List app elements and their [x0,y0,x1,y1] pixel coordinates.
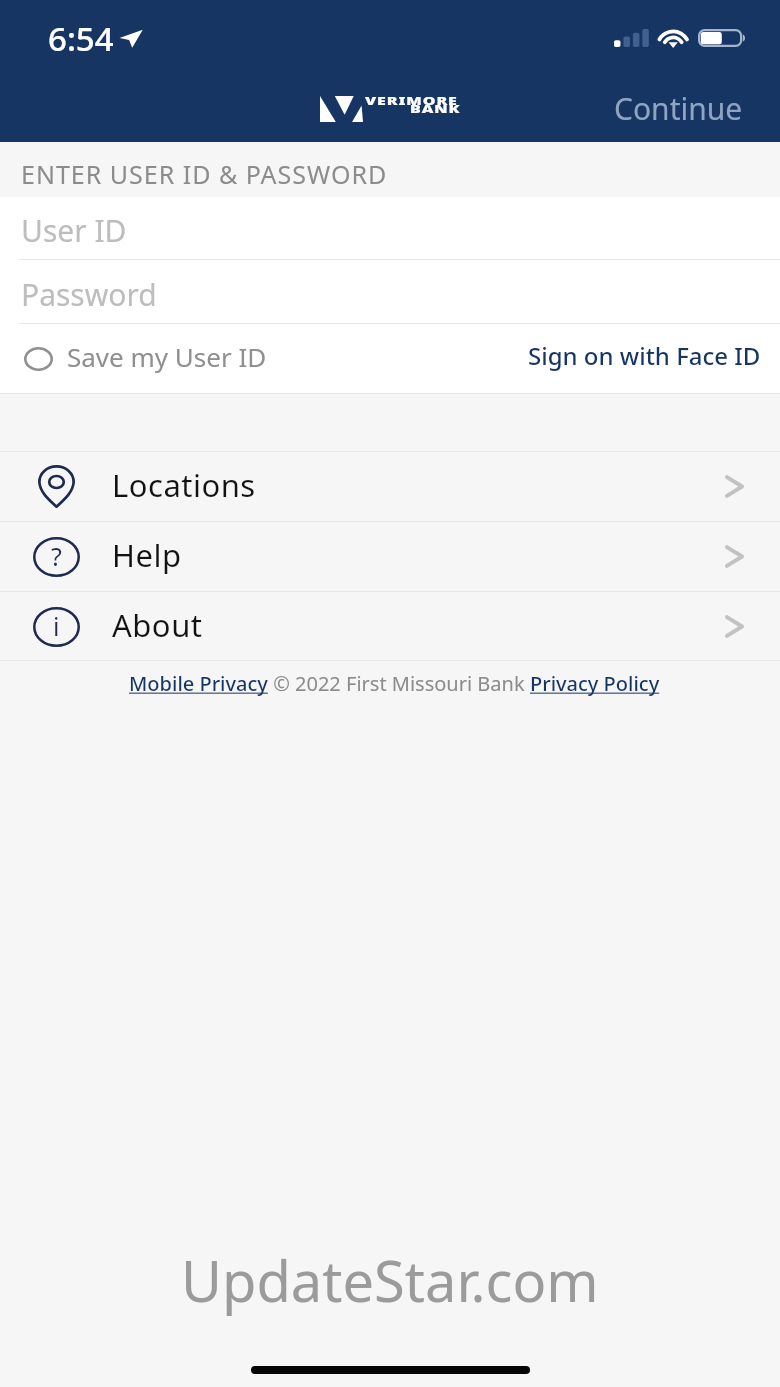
button[interactable] [0,260,780,323]
button[interactable]: Mobile Privacy [129,670,268,697]
button[interactable]: i [0,592,780,661]
other: Location [119,29,143,48]
staticText: © 2022 First Missouri Bank [268,670,530,697]
button[interactable]: Sign on with Face ID [518,333,771,377]
staticText: ? [51,539,62,573]
staticText: Help [112,534,182,576]
staticText: Password [21,274,157,315]
staticText: About [112,604,203,646]
staticText: ENTER USER ID & PASSWORD [21,157,388,191]
staticText: VERIMORE [365,93,458,108]
button[interactable] [0,197,780,259]
button[interactable]: ? [0,522,780,591]
staticText: Locations [112,464,256,506]
staticText: Continue [614,88,743,129]
staticText: Sign on with Face ID [528,339,761,372]
staticText: BANK [410,101,461,116]
staticText: UpdateStar.com [181,1242,599,1318]
button[interactable]: Locations [0,452,780,521]
button[interactable]: Save my User ID [24,341,267,376]
staticText: User ID [21,210,127,251]
staticText: Save my User ID [67,339,267,374]
button[interactable]: Privacy Policy [530,670,660,697]
staticText: 6:54 [48,16,114,61]
staticText: i [53,609,60,643]
button[interactable]: Continue [596,82,760,134]
